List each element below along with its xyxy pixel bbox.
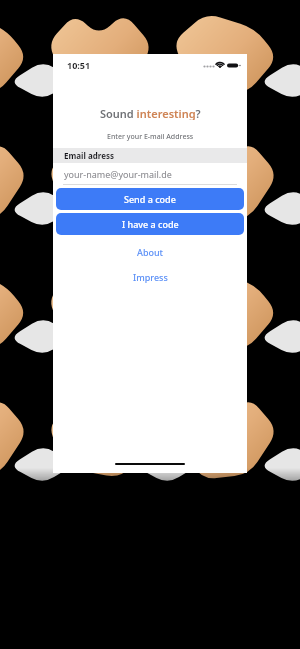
staticText: your-name@your-mail.de [64,168,172,180]
staticText: Sound interesting? [100,106,201,120]
button[interactable]: Send a code [56,188,244,210]
staticText: Impress [133,271,168,283]
staticText: Email adress [64,150,114,161]
button[interactable]: your-name@your-mail.de [53,164,247,184]
staticText: 10:51 [67,59,91,71]
staticText: About [137,246,164,258]
staticText: Enter your E-mail Address [107,132,194,142]
button[interactable]: I have a code [56,213,244,235]
staticText: I have a code [122,218,179,230]
staticText: Send a code [124,193,176,205]
button[interactable]: About [53,244,247,259]
button[interactable]: Impress [53,269,247,284]
